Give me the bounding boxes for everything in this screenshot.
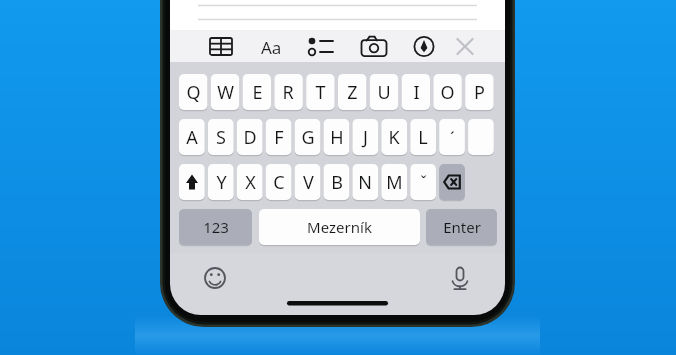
button[interactable]: Backspace: [439, 164, 465, 200]
button[interactable]: W: [211, 74, 239, 110]
staticText: Aa: [261, 36, 282, 59]
button[interactable]: E: [243, 74, 271, 110]
staticText: X: [245, 170, 256, 195]
staticText: U: [377, 80, 391, 105]
button[interactable]: Z: [338, 74, 366, 110]
staticText: H: [330, 125, 344, 150]
button[interactable]: Accent: [468, 119, 494, 155]
button[interactable]: N: [352, 164, 378, 200]
button[interactable]: X: [237, 164, 263, 200]
staticText: Y: [216, 170, 227, 195]
button[interactable]: Shift: [179, 164, 205, 200]
button[interactable]: A: [179, 119, 205, 155]
button[interactable]: 123: [179, 209, 252, 245]
staticText: 123: [203, 217, 229, 237]
staticText: P: [474, 80, 485, 105]
staticText: Z: [347, 80, 358, 105]
button[interactable]: M: [381, 164, 407, 200]
staticText: N: [358, 170, 372, 195]
button[interactable]: Markup: [407, 33, 441, 59]
button[interactable]: F: [266, 119, 292, 155]
staticText: W: [217, 80, 234, 105]
staticText: ˇ: [420, 171, 427, 193]
staticText: J: [363, 125, 368, 150]
button[interactable]: Q: [179, 74, 207, 110]
button[interactable]: Checklist: [305, 33, 339, 59]
button[interactable]: Emoji: [198, 261, 232, 295]
button[interactable]: H: [324, 119, 350, 155]
button[interactable]: B: [324, 164, 350, 200]
button[interactable]: Insert table: [204, 33, 238, 59]
staticText: C: [273, 170, 285, 195]
button[interactable]: Text format: [254, 33, 288, 59]
staticText: R: [282, 80, 294, 105]
staticText: M: [386, 170, 403, 195]
button[interactable]: T: [306, 74, 334, 110]
button[interactable]: S: [208, 119, 234, 155]
staticText: ´: [450, 126, 455, 149]
button[interactable]: Close: [448, 33, 482, 59]
button[interactable]: V: [295, 164, 321, 200]
staticText: F: [274, 125, 284, 150]
staticText: S: [216, 125, 226, 150]
staticText: B: [331, 170, 343, 195]
button[interactable]: P: [465, 74, 493, 110]
staticText: A: [186, 125, 198, 150]
staticText: K: [388, 125, 400, 150]
button[interactable]: U: [370, 74, 398, 110]
button[interactable]: K: [381, 119, 407, 155]
button[interactable]: J: [352, 119, 378, 155]
button[interactable]: D: [237, 119, 263, 155]
staticText: D: [243, 125, 257, 150]
button[interactable]: Dictation: [443, 261, 477, 295]
button[interactable]: G: [295, 119, 321, 155]
button[interactable]: Enter: [426, 209, 497, 245]
staticText: Mezerník: [307, 217, 372, 237]
button[interactable]: Camera: [357, 33, 391, 59]
staticText: Enter: [443, 217, 481, 237]
button[interactable]: C: [266, 164, 292, 200]
staticText: G: [301, 125, 315, 150]
staticText: I: [413, 80, 420, 105]
button[interactable]: R: [274, 74, 302, 110]
button[interactable]: ˇ: [410, 164, 436, 200]
button[interactable]: Y: [208, 164, 234, 200]
button[interactable]: ´: [439, 119, 465, 155]
button[interactable]: I: [402, 74, 430, 110]
staticText: T: [315, 80, 326, 105]
button[interactable]: O: [433, 74, 461, 110]
button[interactable]: Mezerník: [259, 209, 420, 245]
button[interactable]: L: [410, 119, 436, 155]
staticText: V: [303, 170, 314, 195]
staticText: O: [440, 80, 455, 105]
staticText: L: [418, 125, 428, 150]
staticText: Q: [186, 80, 201, 105]
staticText: E: [252, 80, 263, 105]
